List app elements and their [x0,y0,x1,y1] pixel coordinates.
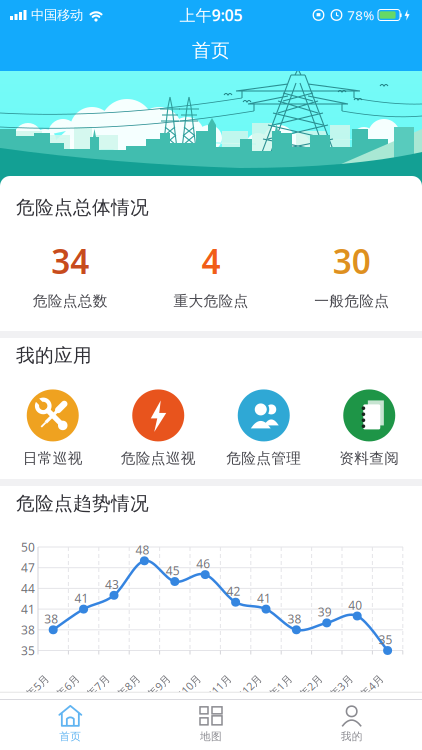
staticText: 首页 [59,730,81,743]
staticText: 50 [21,539,35,555]
staticText: 一般危险点 [314,292,389,310]
staticText: 危险点管理 [226,449,301,467]
staticText: 我的 [341,730,363,743]
staticText: 39 [318,604,332,620]
button[interactable]: 资料查阅 [316,389,422,467]
button[interactable]: 首页 [0,705,141,743]
staticText: 危险点总数 [33,292,108,310]
staticText: 43 [105,576,119,592]
staticText: 2019年1月 [246,687,298,702]
staticText: 42 [227,583,241,599]
staticText: 2018年11月 [180,690,238,704]
staticText: 2018年10月 [150,690,208,704]
staticText: 41 [75,590,89,606]
staticText: 38 [21,622,35,638]
staticText: 41 [21,601,35,617]
staticText: 41 [257,590,271,606]
staticText: 地图 [200,730,222,743]
staticText: 2018年9月 [124,687,176,702]
staticText: 2019年3月 [307,687,359,702]
staticText: 48 [135,542,149,558]
button[interactable]: 地图 [141,705,281,743]
staticText: 2019年4月 [337,687,389,702]
staticText: 2018年12月 [210,690,268,704]
staticText: 2018年5月 [3,687,55,702]
staticText: 首页 [192,39,230,62]
staticText: 2018年8月 [94,687,146,702]
staticText: 2018年6月 [33,687,85,702]
staticText: 资料查阅 [339,449,399,467]
staticText: 44 [21,580,35,596]
staticText: 我的应用 [16,344,92,367]
button[interactable]: 日常巡视 [0,389,105,467]
staticText: 2018年7月 [64,687,116,702]
staticText: 35 [21,642,35,658]
staticText: 4 [201,239,220,283]
staticText: 78% [347,6,374,24]
staticText: 40 [348,597,362,613]
staticText: 46 [196,556,210,571]
staticText: 38 [44,611,58,627]
staticText: 47 [21,560,35,576]
staticText: 危险点总体情况 [16,196,149,219]
staticText: 35 [379,631,393,647]
staticText: 中国移动 [31,7,83,23]
staticText: 危险点趋势情况 [16,492,149,515]
staticText: 重大危险点 [173,292,248,310]
button[interactable]: 我的 [281,705,422,743]
button[interactable]: 危险点巡视 [105,389,211,467]
staticText: 38 [287,611,301,627]
staticText: 2019年2月 [276,687,328,702]
staticText: 危险点巡视 [121,449,196,467]
button[interactable]: 危险点管理 [211,389,316,467]
staticText: 45 [166,562,180,578]
staticText: 上午9:05 [179,4,242,26]
staticText: 日常巡视 [23,449,83,467]
staticText: 34 [51,239,89,283]
staticText: 30 [333,239,371,283]
